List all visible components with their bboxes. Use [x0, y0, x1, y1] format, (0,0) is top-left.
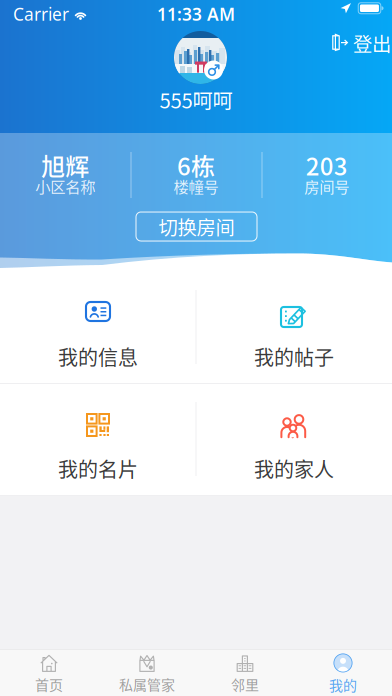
button[interactable]: 我的名片	[0, 384, 196, 495]
staticText: 555呵呵	[159, 85, 232, 114]
staticText: 私属管家	[119, 674, 175, 694]
button[interactable]: 我的	[294, 651, 392, 696]
button[interactable]: 切换房间	[136, 212, 257, 241]
staticText: 首页	[35, 674, 63, 694]
staticText: 登出	[353, 29, 391, 57]
button[interactable]: 我的家人	[196, 384, 392, 495]
staticText: 我的信息	[58, 342, 138, 371]
staticText: 房间号	[304, 175, 349, 197]
staticText: 小区名称	[35, 175, 95, 197]
staticText: 我的	[329, 674, 357, 695]
staticText: 我的家人	[254, 454, 334, 483]
staticText: 11:33 AM	[157, 2, 235, 25]
staticText: Carrier	[13, 2, 69, 25]
button[interactable]: 我的帖子	[196, 272, 392, 383]
button[interactable]: 私属管家	[98, 651, 196, 696]
staticText: 旭辉	[41, 148, 89, 182]
button[interactable]: 邻里	[196, 651, 294, 696]
staticText: 邻里	[231, 674, 259, 694]
staticText: 6栋	[177, 148, 215, 182]
button[interactable]: 登出	[322, 24, 392, 62]
staticText: 楼幢号	[173, 175, 218, 197]
button[interactable]: 我的信息	[0, 272, 196, 383]
button[interactable]: 首页	[0, 651, 98, 696]
staticText: 203	[306, 148, 348, 182]
staticText: 我的名片	[58, 454, 138, 483]
staticText: 我的帖子	[254, 342, 334, 371]
staticText: 切换房间	[158, 212, 234, 240]
